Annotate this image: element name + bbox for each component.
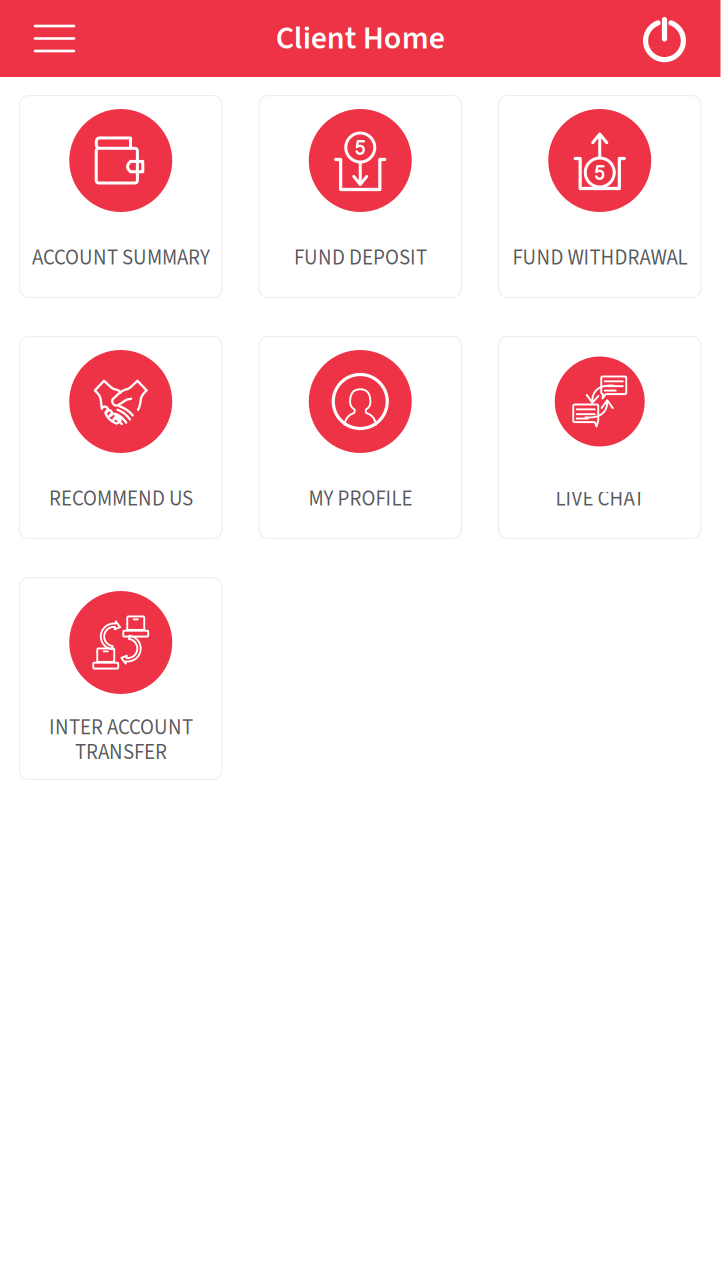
button[interactable]: FUND WITHDRAWAL [498, 95, 701, 298]
staticText: RECOMMEND US [49, 484, 193, 514]
button[interactable]: RECOMMEND US [19, 336, 222, 539]
staticText: MY PROFILE [308, 484, 412, 514]
staticText: FUND WITHDRAWAL [512, 243, 687, 273]
button[interactable]: FUND DEPOSIT [258, 95, 462, 298]
staticText: FUND DEPOSIT [294, 243, 427, 273]
staticText: Client Home [276, 16, 445, 61]
button[interactable]: ACCOUNT SUMMARY [19, 95, 222, 298]
staticText: LIVE CHAT [555, 484, 644, 514]
button[interactable]: LIVE CHAT [498, 336, 701, 539]
button[interactable]: Log out [622, 6, 720, 70]
button[interactable]: MY PROFILE [258, 336, 462, 539]
staticText: ACCOUNT SUMMARY [32, 243, 210, 273]
button[interactable]: Menu [0, 8, 94, 69]
staticText: INTER ACCOUNT TRANSFER [49, 713, 193, 767]
button[interactable]: INTER ACCOUNT TRANSFER [19, 577, 222, 780]
